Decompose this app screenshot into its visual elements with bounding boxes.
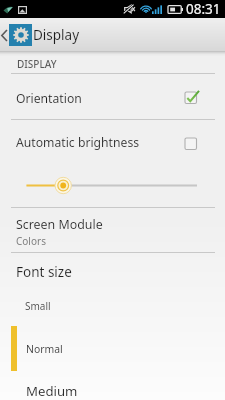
staticText: Display [33,26,80,44]
button[interactable]: Normal [0,326,225,371]
staticText: Normal [26,342,63,356]
button[interactable]: Automatic brightness [0,120,225,164]
staticText: 08:31 [186,0,221,18]
staticText: DISPLAY [17,57,57,71]
button[interactable]: Orientation [0,73,225,119]
button[interactable]: Medium [0,371,225,400]
button[interactable]: Brightness [0,164,225,207]
button[interactable]: Navigate up [0,18,225,52]
staticText: Font size [16,263,72,281]
button[interactable]: Font size [0,253,225,285]
staticText: Medium [26,382,78,400]
staticText: Colors [16,234,46,248]
staticText: Small [25,299,51,313]
staticText: Automatic brightness [16,134,140,151]
staticText: Orientation [16,90,82,107]
button[interactable]: Small [0,285,225,326]
staticText: Screen Module [16,216,103,233]
button[interactable]: Screen Module [0,208,225,252]
